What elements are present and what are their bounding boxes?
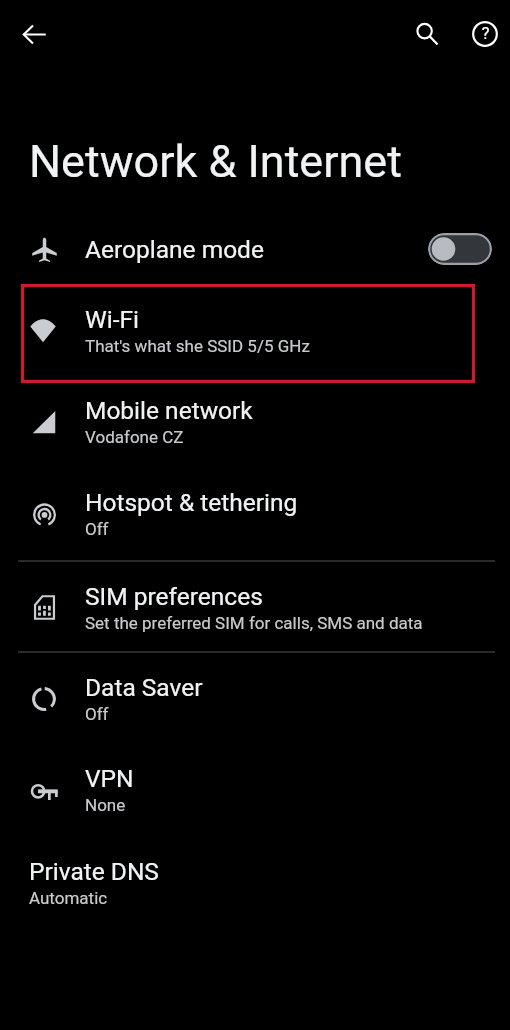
staticText: SIM preferences	[85, 582, 263, 611]
staticText: ?	[481, 23, 490, 43]
button[interactable]: SIM preferences	[0, 562, 510, 653]
button[interactable]: Wi-Fi	[0, 285, 510, 376]
staticText: Vodafone CZ	[85, 427, 184, 447]
staticText: Off	[85, 704, 109, 724]
button[interactable]: Private DNS	[0, 837, 510, 928]
staticText: Automatic	[29, 888, 108, 908]
button[interactable]: Aeroplane mode off	[428, 233, 492, 265]
button[interactable]: Navigate up	[10, 10, 58, 58]
staticText: Network & Internet	[29, 135, 402, 188]
staticText: Aeroplane mode	[85, 235, 264, 264]
button[interactable]: Aeroplane mode	[0, 221, 510, 277]
staticText: Off	[85, 519, 109, 539]
staticText: Hotspot & tethering	[85, 488, 298, 517]
staticText: Private DNS	[29, 857, 159, 886]
staticText: Set the preferred SIM for calls, SMS and…	[85, 613, 423, 633]
button[interactable]: VPN	[0, 744, 510, 835]
staticText: Data Saver	[85, 673, 203, 702]
staticText: Mobile network	[85, 396, 253, 425]
staticText: Wi-Fi	[85, 305, 139, 334]
button[interactable]: Data Saver	[0, 653, 510, 744]
button[interactable]: Mobile network	[0, 376, 510, 467]
staticText: VPN	[85, 764, 134, 793]
button[interactable]: Hotspot & tethering	[0, 468, 510, 559]
button[interactable]: Search settings	[403, 10, 451, 58]
staticText: That's what she SSID 5/5 GHz	[85, 336, 310, 356]
staticText: None	[85, 795, 126, 815]
button[interactable]: Help and feedback	[461, 10, 509, 58]
